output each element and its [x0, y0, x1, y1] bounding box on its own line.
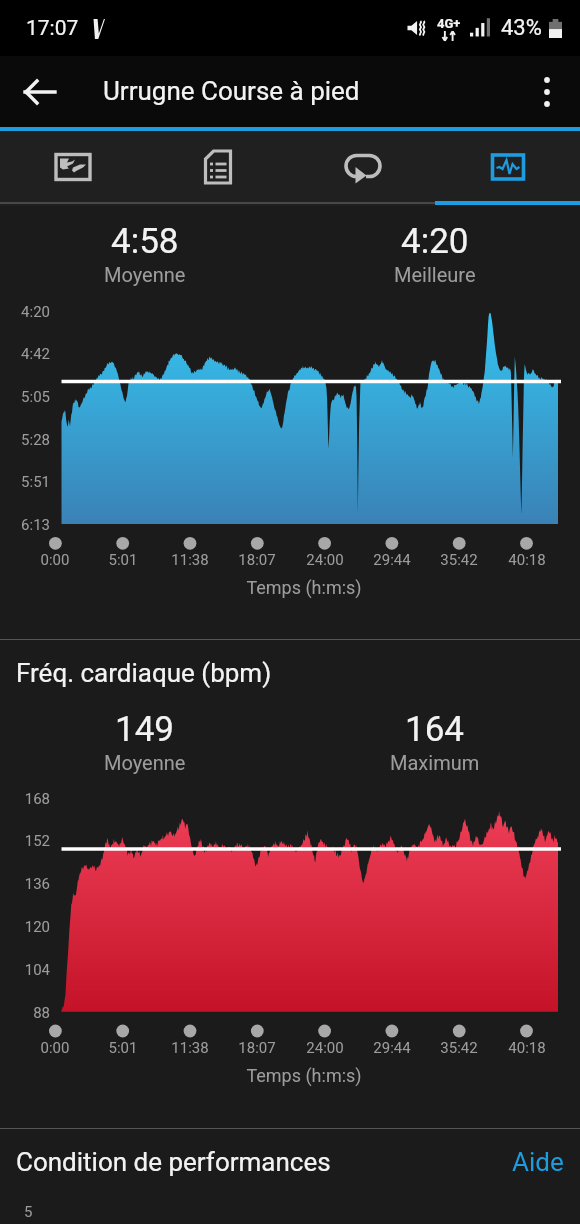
staticText: 24:00: [285, 1039, 365, 1057]
staticText: 18:07: [217, 1039, 297, 1057]
staticText: 4:58: [111, 221, 179, 262]
staticText: 40:18: [487, 551, 567, 569]
staticText: 11:38: [150, 1039, 230, 1057]
staticText: Condition de performances: [16, 1147, 331, 1177]
staticText: 152: [0, 832, 50, 850]
staticText: Moyenne: [104, 751, 186, 774]
staticText: 168: [0, 790, 50, 808]
staticText: 120: [0, 918, 50, 936]
button[interactable]: Map: [0, 131, 145, 202]
staticText: 0:00: [15, 551, 95, 569]
staticText: Moyenne: [104, 263, 186, 286]
staticText: 29:44: [352, 1039, 432, 1057]
staticText: 18:07: [217, 551, 297, 569]
button[interactable]: Back: [10, 62, 70, 122]
button[interactable]: Aide: [512, 1147, 564, 1177]
staticText: Temps (h:m:s): [14, 577, 580, 598]
staticText: 0:00: [15, 1039, 95, 1057]
staticText: 164: [405, 709, 465, 750]
button[interactable]: Laps: [290, 131, 435, 202]
staticText: 104: [0, 961, 50, 979]
staticText: 136: [0, 875, 50, 893]
staticText: 149: [115, 709, 175, 750]
staticText: 5:01: [83, 551, 163, 569]
staticText: 5: [24, 1203, 33, 1221]
staticText: 5:51: [0, 473, 50, 491]
staticText: Urrugne Course à pied: [103, 76, 360, 106]
staticText: 11:38: [150, 551, 230, 569]
button[interactable]: Details: [145, 131, 290, 202]
staticText: 35:42: [419, 551, 499, 569]
staticText: Temps (h:m:s): [14, 1065, 580, 1086]
staticText: 5:28: [0, 431, 50, 449]
staticText: 29:44: [352, 551, 432, 569]
staticText: Aide: [512, 1147, 564, 1177]
staticText: 24:00: [285, 551, 365, 569]
staticText: 4G+: [437, 16, 461, 31]
staticText: 4:20: [401, 221, 469, 262]
staticText: 88: [0, 1004, 50, 1022]
staticText: 40:18: [487, 1039, 567, 1057]
staticText: Maximum: [390, 751, 480, 774]
staticText: 5:01: [83, 1039, 163, 1057]
button[interactable]: Charts: [435, 131, 580, 202]
staticText: 5:05: [0, 388, 50, 406]
staticText: Fréq. cardiaque (bpm): [16, 658, 272, 688]
button[interactable]: More options: [517, 62, 577, 122]
staticText: 4:20: [0, 303, 50, 321]
staticText: 35:42: [419, 1039, 499, 1057]
staticText: 4:42: [0, 345, 50, 363]
staticText: 43%: [501, 15, 542, 41]
staticText: 6:13: [0, 516, 50, 534]
staticText: Meilleure: [394, 263, 476, 286]
staticText: 17:07: [26, 16, 79, 41]
